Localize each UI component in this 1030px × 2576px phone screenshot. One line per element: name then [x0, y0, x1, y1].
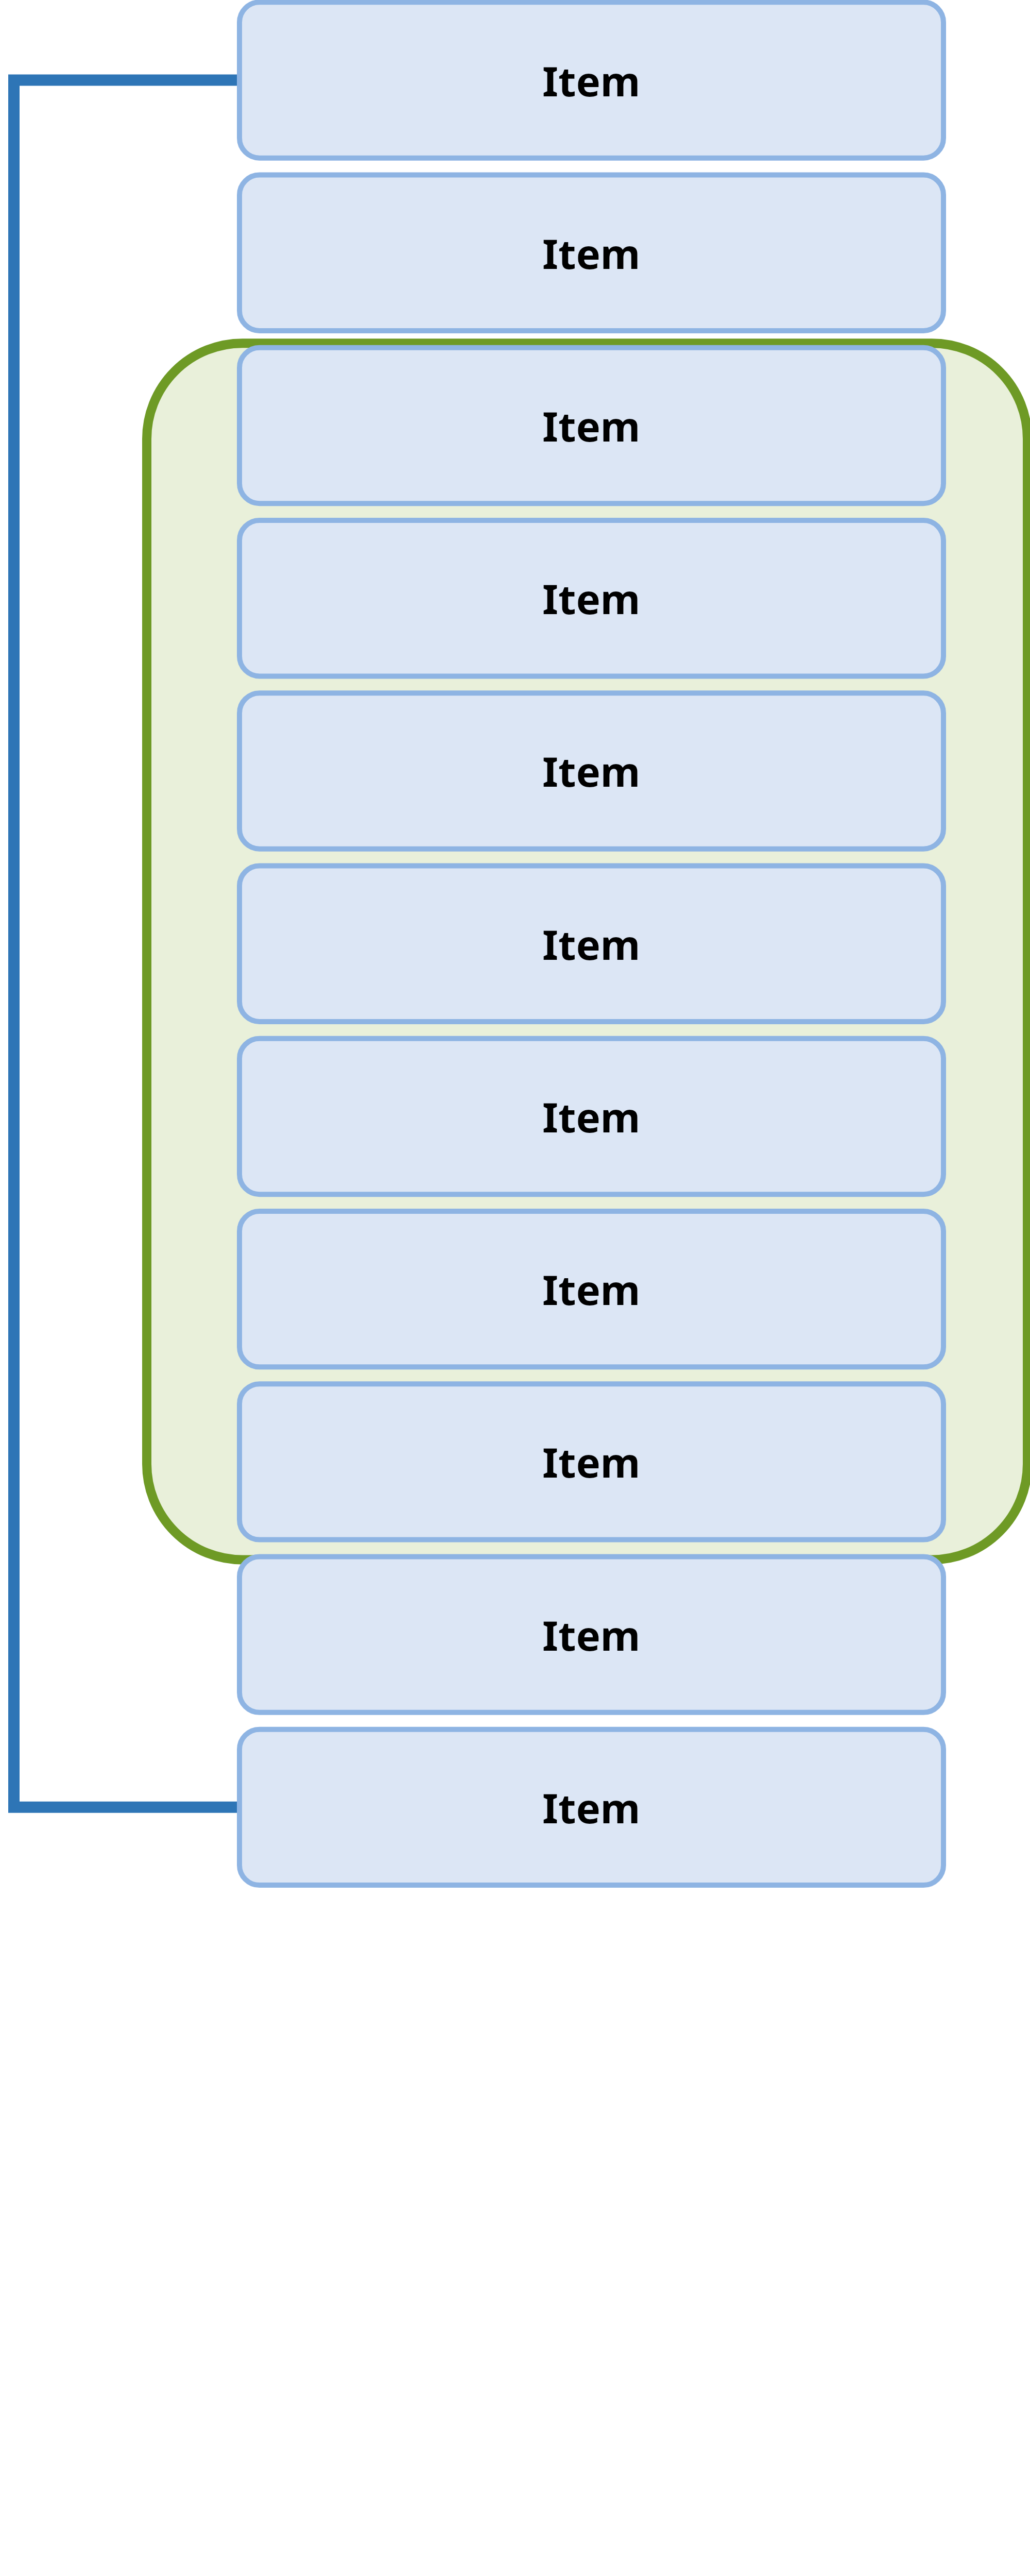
button[interactable]: Item 5: [239, 693, 943, 849]
button[interactable]: Item 1: [239, 2, 943, 158]
button[interactable]: Item 7: [239, 1039, 943, 1194]
button[interactable]: Item 10: [239, 1556, 943, 1712]
button[interactable]: Item 4: [239, 520, 943, 676]
button[interactable]: Item 8: [239, 1211, 943, 1367]
button[interactable]: Item 9: [239, 1384, 943, 1539]
button[interactable]: Item 6: [239, 866, 943, 1021]
button[interactable]: Item 3: [239, 348, 943, 503]
button[interactable]: Item 11: [239, 1730, 943, 1885]
button[interactable]: Item 2: [239, 175, 943, 331]
